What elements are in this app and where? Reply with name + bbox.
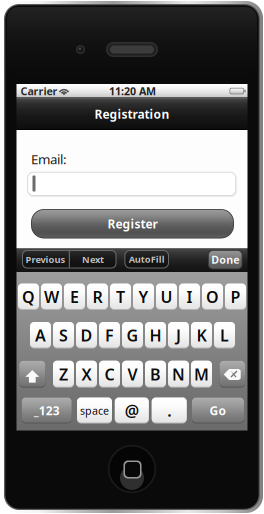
button[interactable]: F xyxy=(99,322,120,348)
staticText: W xyxy=(44,286,59,307)
staticText: S xyxy=(59,325,68,346)
staticText: _123 xyxy=(34,402,60,418)
button[interactable]: space xyxy=(77,397,112,423)
button[interactable]: U xyxy=(156,283,177,310)
button[interactable]: Done xyxy=(208,250,242,269)
staticText: Z xyxy=(59,364,68,385)
staticText: G xyxy=(126,325,138,346)
staticText: K xyxy=(196,325,206,346)
staticText: . xyxy=(167,400,171,421)
staticText: C xyxy=(104,364,114,385)
button[interactable]: N xyxy=(168,361,189,388)
staticText: Go xyxy=(209,402,226,418)
staticText: R xyxy=(92,286,102,307)
staticText: @ xyxy=(125,400,139,421)
staticText: V xyxy=(127,364,137,385)
staticText: D xyxy=(80,325,92,346)
button[interactable]: Shift xyxy=(19,361,45,388)
button[interactable]: Q xyxy=(18,283,39,310)
button[interactable]: Previous xyxy=(22,254,69,265)
button[interactable]: P xyxy=(225,283,246,310)
button[interactable]: B xyxy=(145,361,166,388)
button[interactable]: G xyxy=(122,322,143,348)
staticText: M xyxy=(194,364,209,385)
button[interactable]: H xyxy=(145,322,166,348)
staticText: T xyxy=(116,286,125,307)
button[interactable]: M xyxy=(191,361,212,388)
button[interactable]: L xyxy=(214,322,235,348)
button[interactable]: R xyxy=(87,283,108,310)
staticText: U xyxy=(160,286,172,307)
staticText: Done xyxy=(211,253,239,267)
staticText: J xyxy=(176,325,181,346)
staticText: A xyxy=(35,325,46,346)
button[interactable]: Register xyxy=(31,209,234,238)
button[interactable]: I xyxy=(179,283,200,310)
staticText: B xyxy=(150,364,161,385)
button[interactable]: K xyxy=(191,322,212,348)
button[interactable]: Go xyxy=(192,397,244,423)
button[interactable]: W xyxy=(41,283,62,310)
button[interactable]: A xyxy=(30,322,51,348)
button[interactable]: Z xyxy=(53,361,74,388)
staticText: Registration xyxy=(94,106,169,122)
staticText: Email: xyxy=(31,150,67,168)
staticText: I xyxy=(186,286,192,307)
button[interactable]: E xyxy=(64,283,85,310)
button[interactable]: . xyxy=(152,397,187,423)
staticText: N xyxy=(172,364,185,385)
staticText: Y xyxy=(138,286,148,307)
staticText: H xyxy=(149,325,161,346)
staticText: O xyxy=(206,286,219,307)
staticText: Previous xyxy=(25,253,65,266)
staticText: AutoFill xyxy=(129,253,165,265)
button[interactable]: J xyxy=(168,322,189,348)
button[interactable]: Next xyxy=(69,254,116,265)
staticText: 11:20 AM xyxy=(109,84,156,98)
staticText: space xyxy=(80,403,109,418)
button[interactable]: D xyxy=(76,322,97,348)
button[interactable]: V xyxy=(122,361,143,388)
button[interactable]: S xyxy=(53,322,74,348)
staticText: P xyxy=(230,286,240,307)
staticText: L xyxy=(220,325,229,346)
staticText: Carrier xyxy=(20,84,57,98)
button[interactable]: Y xyxy=(133,283,154,310)
button[interactable]: T xyxy=(110,283,131,310)
staticText: Q xyxy=(22,286,35,307)
staticText: Register xyxy=(107,216,157,232)
button[interactable]: @ xyxy=(115,397,149,423)
button[interactable]: C xyxy=(99,361,120,388)
button[interactable]: O xyxy=(202,283,223,310)
staticText: F xyxy=(105,325,114,346)
button[interactable]: X xyxy=(76,361,97,388)
staticText: E xyxy=(70,286,79,307)
button[interactable]: _123 xyxy=(22,397,72,423)
staticText: X xyxy=(81,364,91,385)
button[interactable]: AutoFill xyxy=(124,250,169,268)
button[interactable]: Delete xyxy=(219,361,245,388)
staticText: Next xyxy=(82,253,104,266)
